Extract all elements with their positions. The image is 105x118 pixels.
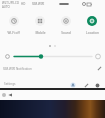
staticText: AUTO	[2, 5, 10, 9]
button[interactable]: Power	[93, 81, 101, 89]
staticText: Settings	[4, 82, 16, 86]
staticText: Location	[86, 31, 99, 35]
staticText: WLT-UPE-CO	[2, 1, 19, 5]
staticText: SIM-WIFI	[32, 2, 45, 6]
staticText: Mobile	[35, 31, 46, 35]
button[interactable]	[0, 90, 105, 100]
button[interactable]: Brightness	[0, 52, 105, 61]
button[interactable]: Mobile	[27, 16, 53, 35]
button[interactable]: Location	[79, 16, 105, 35]
staticText: Wi-Fi off	[7, 31, 20, 35]
staticText: HD	[21, 2, 26, 6]
button[interactable]: Edit	[82, 81, 90, 89]
button[interactable]: Wi-Fi off	[0, 16, 27, 35]
staticText: Sound	[61, 31, 71, 35]
button[interactable]: User profile	[69, 81, 77, 89]
button[interactable]: Edit	[96, 65, 103, 72]
staticText: SIM-WIFI Notification	[3, 67, 32, 71]
button[interactable]: Sound	[53, 16, 79, 35]
